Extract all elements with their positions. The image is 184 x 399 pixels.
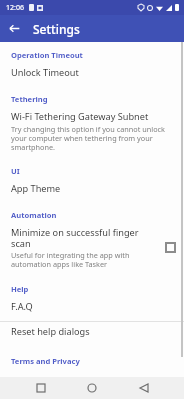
button[interactable]: Unlock Timeout — [0, 63, 184, 87]
button[interactable]: Home — [81, 377, 103, 399]
staticText: Minimize on successful finger scan — [11, 226, 159, 249]
staticText: Try changing this option if you cannot u… — [11, 124, 176, 152]
button[interactable]: Back — [133, 377, 155, 399]
button[interactable]: Back — [5, 19, 24, 38]
staticText: 12:06 — [6, 3, 24, 13]
staticText: UI — [11, 166, 20, 176]
staticText: Reset help dialogs — [11, 325, 90, 338]
staticText: Settings — [33, 21, 80, 37]
staticText: Useful for integrating the app with auto… — [11, 250, 159, 269]
staticText: App Theme — [11, 182, 61, 195]
staticText: Operation Timeout — [11, 50, 83, 60]
staticText: Wi-Fi Tethering Gateway Subnet — [11, 110, 149, 123]
staticText: Automation — [11, 210, 57, 220]
button[interactable]: App Theme — [0, 179, 184, 205]
staticText: Help — [11, 284, 29, 294]
button[interactable]: Reset help dialogs — [0, 322, 184, 346]
staticText: Unlock Timeout — [11, 66, 79, 79]
button[interactable]: Recent apps — [30, 377, 52, 399]
button[interactable]: Wi-Fi Tethering Gateway Subnet — [0, 107, 184, 160]
staticText: F.A.Q — [11, 300, 33, 313]
button[interactable]: F.A.Q — [0, 297, 184, 321]
staticText: Terms and Privacy — [11, 356, 80, 366]
staticText: Tethering — [11, 94, 48, 104]
button[interactable]: Minimize on successful finger scan — [0, 223, 184, 279]
